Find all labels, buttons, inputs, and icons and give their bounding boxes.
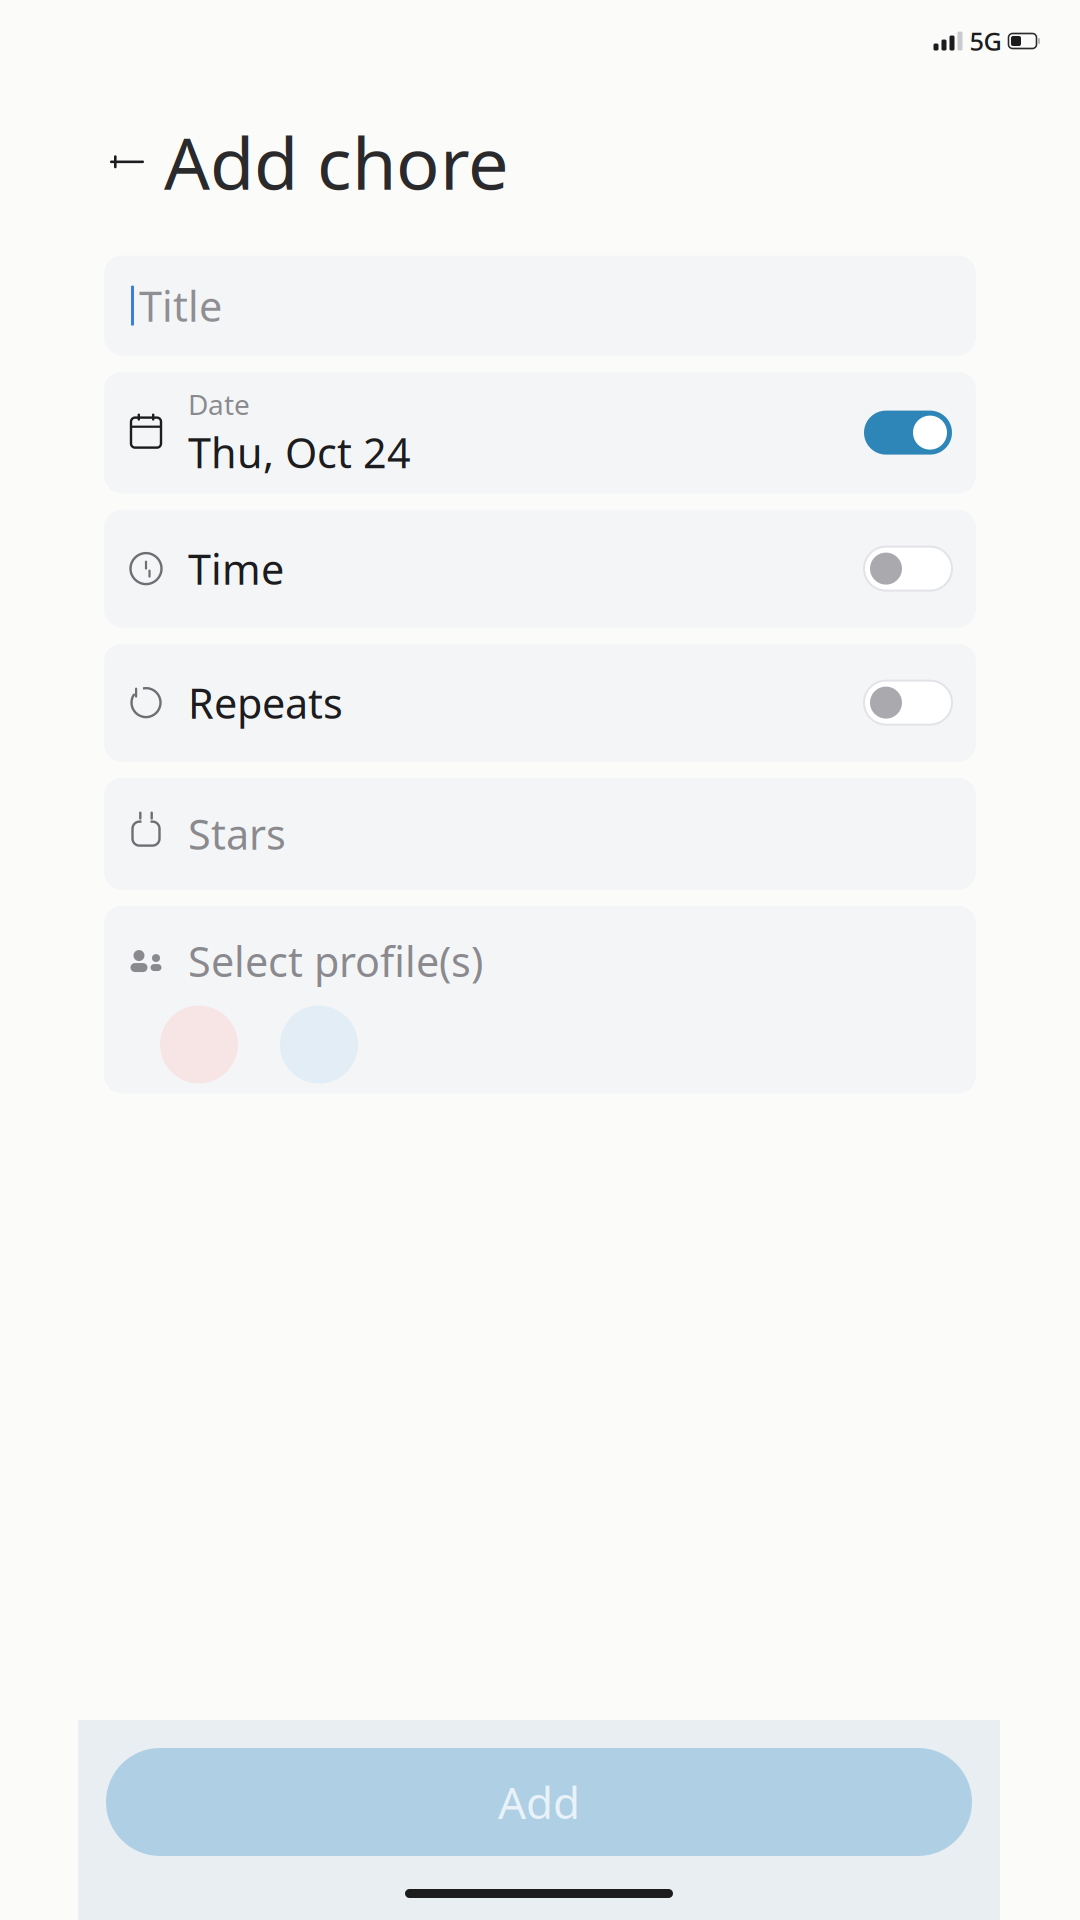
staticText: Select profile(s) [188,934,483,988]
button[interactable]: Back [104,139,150,185]
button[interactable]: Add [106,1748,972,1856]
button[interactable]: Repeats [104,644,976,762]
button[interactable]: Date [104,372,976,494]
staticText: 5G [969,24,1001,58]
staticText: Title [139,278,222,333]
button[interactable]: Select profile(s) [104,906,976,1094]
button[interactable]: Time [104,510,976,628]
staticText: Date [188,386,250,423]
staticText: Repeats [188,675,343,730]
staticText: Add [498,1773,580,1831]
staticText: Thu, Oct 24 [188,425,411,480]
staticText: Stars [188,806,286,861]
button[interactable]: Title [104,256,976,356]
staticText: Time [188,541,284,596]
staticText: Add chore [164,114,509,210]
button[interactable]: Stars [104,778,976,890]
